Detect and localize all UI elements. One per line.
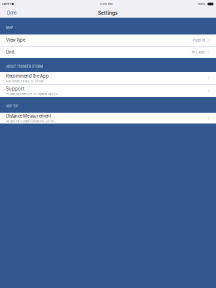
staticText: Contact the developer for technical supp… [6, 92, 58, 96]
button[interactable]: View Type [0, 34, 216, 46]
staticText: 3:09 PM [100, 2, 112, 6]
staticText: Done [7, 10, 16, 15]
staticText: Measure the distance between two points [6, 120, 54, 123]
button[interactable]: Recommend the App [0, 72, 216, 84]
staticText: Distance Measurement [6, 113, 51, 119]
button[interactable]: Unit [0, 46, 216, 58]
button[interactable]: Distance Measurement [0, 113, 216, 123]
button[interactable]: Support [0, 85, 216, 97]
button[interactable]: Done [0, 7, 23, 18]
staticText: Hybrid [193, 38, 205, 43]
staticText: Recommend the app to a friend [6, 80, 44, 83]
staticText: Recommend the App [6, 74, 49, 79]
staticText: mi, km [192, 50, 205, 55]
staticText: ABOUT THUNDER STORM [6, 65, 43, 68]
staticText: APP TIP [6, 105, 18, 108]
staticText: Support [6, 86, 24, 92]
staticText: Unit [6, 50, 14, 55]
staticText: MAP [6, 26, 13, 30]
staticText: Settings [98, 10, 118, 16]
staticText: 100% [198, 2, 206, 6]
staticText: View Type [6, 38, 25, 43]
staticText: Carrier [2, 2, 11, 6]
